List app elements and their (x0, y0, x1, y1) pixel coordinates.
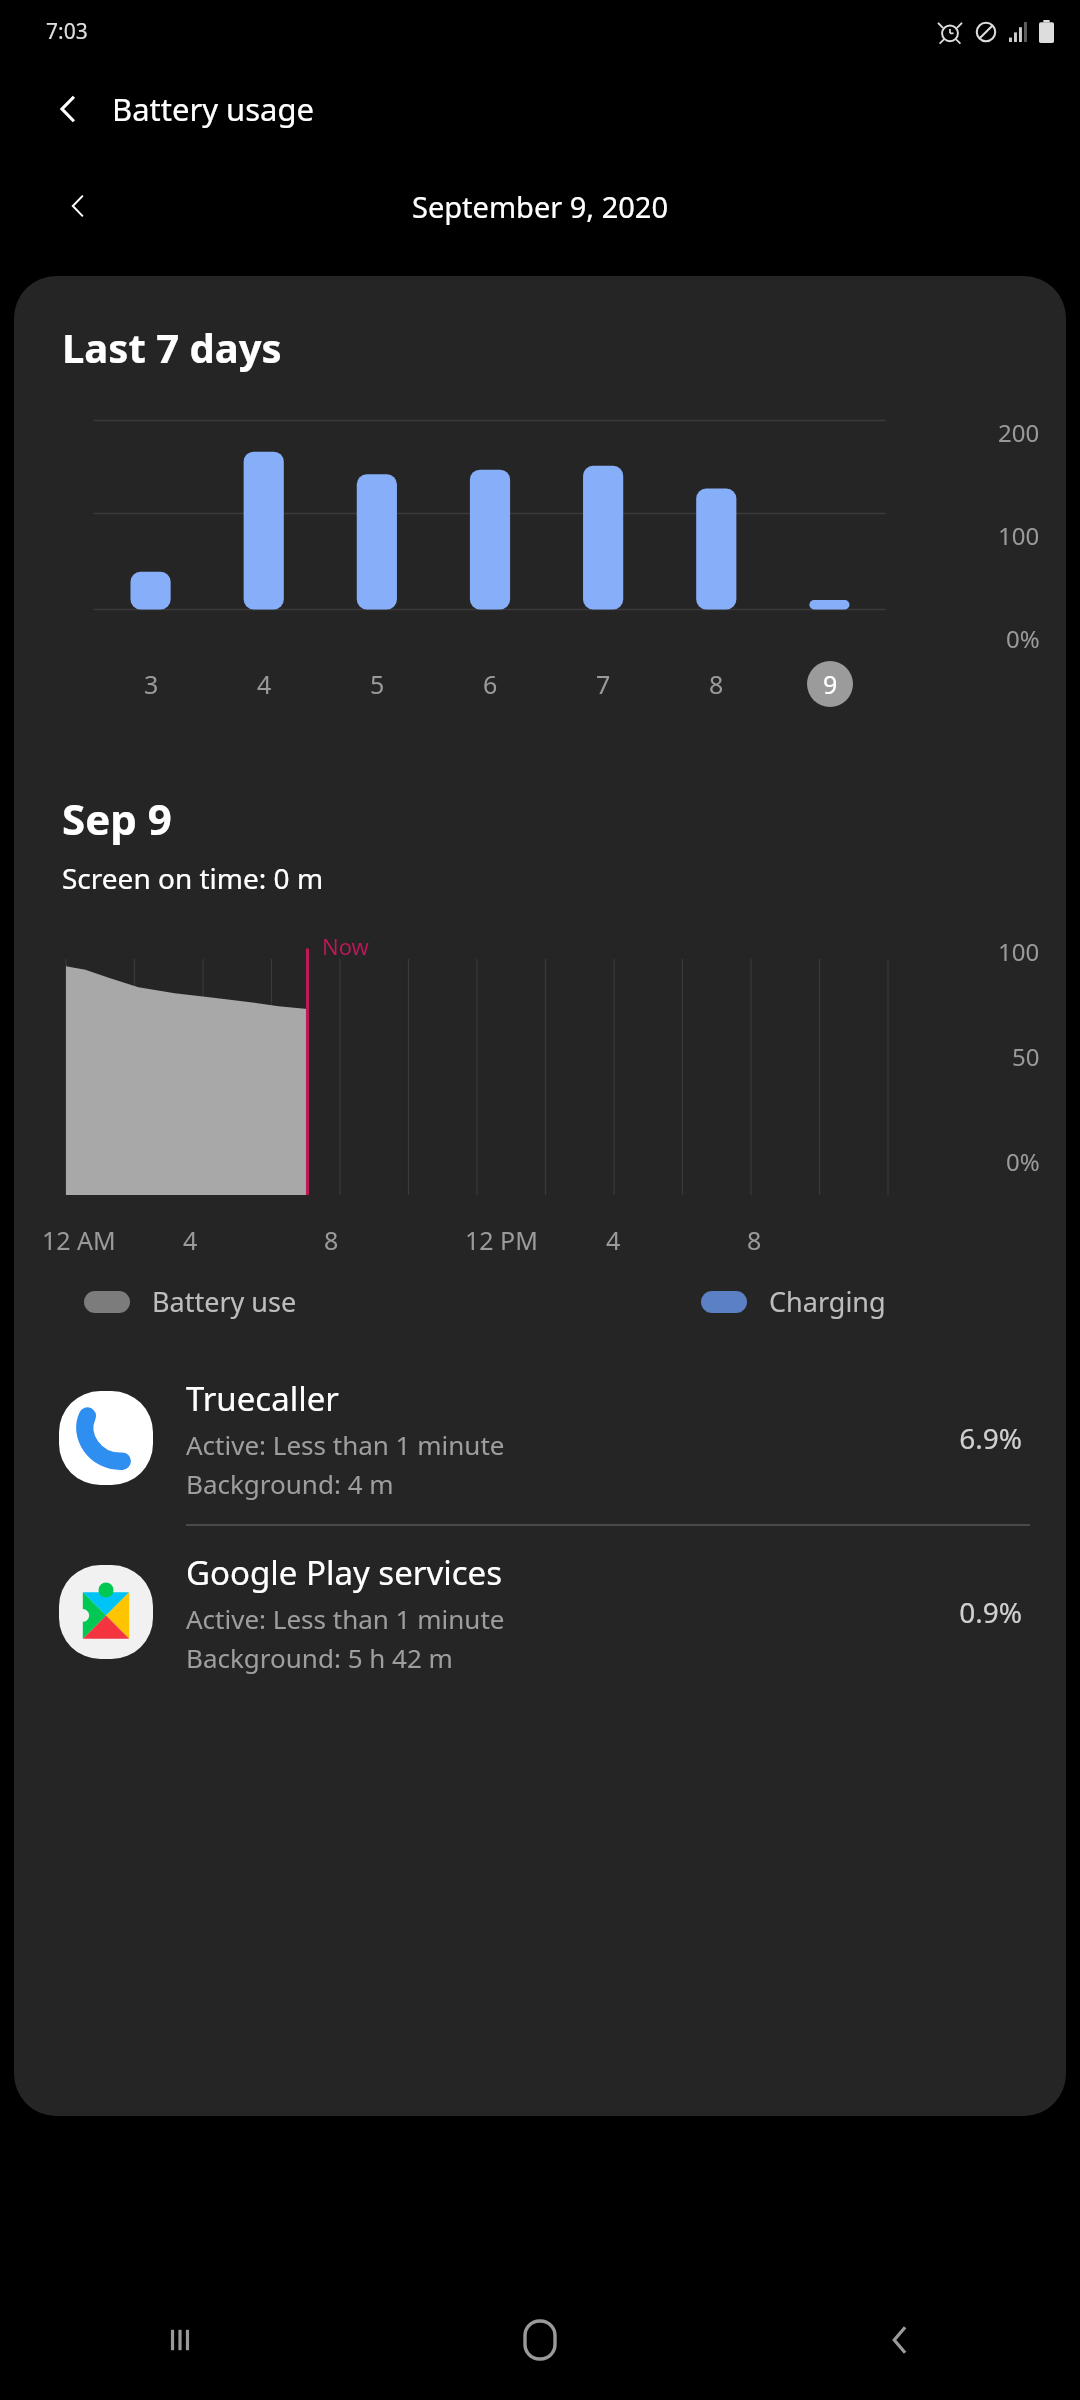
staticText: Active: Less than 1 minute (186, 1601, 505, 1636)
staticText: Charging (769, 1283, 886, 1320)
button[interactable]: Back (40, 81, 96, 137)
button[interactable]: 5 (321, 658, 434, 710)
staticText: 7 (596, 667, 611, 701)
staticText: 100 (998, 935, 1040, 968)
staticText: 6.9% (959, 1419, 1022, 1457)
button[interactable]: Previous day (52, 180, 104, 232)
staticText: 8 (747, 1223, 762, 1257)
staticText: 8 (324, 1223, 339, 1257)
staticText: 0% (1006, 1145, 1040, 1178)
staticText: September 9, 2020 (412, 187, 669, 226)
staticText: 8 (709, 667, 724, 701)
button[interactable]: 8 (660, 658, 773, 710)
button[interactable]: Charging (701, 1283, 886, 1320)
staticText: Sep 9 (62, 790, 172, 847)
staticText: Last 7 days (62, 320, 282, 374)
button[interactable]: Recents (0, 2280, 360, 2400)
button[interactable]: Back (720, 2280, 1080, 2400)
staticText: Active: Less than 1 minute (186, 1427, 505, 1462)
staticText: Background: 5 h 42 m (186, 1640, 453, 1675)
staticText: 0% (1006, 622, 1040, 655)
staticText: 12 AM (42, 1223, 116, 1257)
button[interactable]: Truecaller (14, 1352, 1066, 1524)
staticText: Screen on time: 0 m (62, 859, 324, 897)
staticText: 4 (183, 1223, 198, 1257)
staticText: 100 (998, 519, 1040, 552)
staticText: 4 (606, 1223, 621, 1257)
button[interactable]: 6 (434, 658, 547, 710)
staticText: 9 (823, 667, 838, 701)
staticText: 7:03 (46, 17, 88, 46)
staticText: 0.9% (959, 1593, 1022, 1631)
button[interactable]: 9 (773, 658, 886, 710)
staticText: Truecaller (186, 1376, 339, 1421)
staticText: 5 (370, 667, 385, 701)
button[interactable]: 7 (547, 658, 660, 710)
staticText: Battery usage (112, 88, 315, 130)
staticText: Battery use (152, 1283, 297, 1320)
staticText: 12 PM (465, 1223, 538, 1257)
staticText: 50 (1012, 1040, 1040, 1073)
staticText: Now (322, 931, 369, 961)
button[interactable]: 4 (208, 658, 321, 710)
staticText: 3 (144, 667, 159, 701)
staticText: 200 (998, 416, 1040, 449)
staticText: Google Play services (186, 1550, 502, 1595)
staticText: 6 (483, 667, 498, 701)
button[interactable]: Google Play services (14, 1526, 1066, 1698)
button[interactable]: Battery use (84, 1283, 297, 1320)
staticText: Background: 4 m (186, 1466, 394, 1501)
button[interactable]: Home (360, 2280, 720, 2400)
button[interactable]: 3 (94, 658, 208, 710)
staticText: 4 (257, 667, 272, 701)
